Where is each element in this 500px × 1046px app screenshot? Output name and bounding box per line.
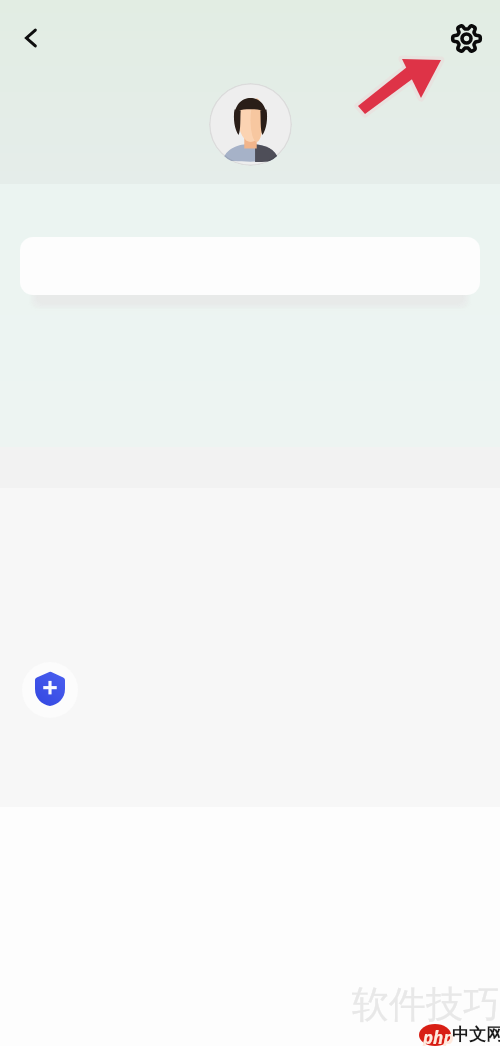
button[interactable]: Add protection	[22, 662, 78, 718]
button[interactable]: Back	[10, 17, 52, 59]
staticText: php	[423, 1026, 454, 1046]
button[interactable]: Settings	[445, 17, 487, 59]
staticText: 中文网	[452, 1024, 500, 1045]
staticText: 软件技巧	[352, 981, 500, 1028]
